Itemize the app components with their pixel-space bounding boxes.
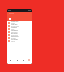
staticText: Amelia Chen	[11, 21, 19, 23]
button[interactable]: Tab 3	[20, 57, 26, 63]
staticText: Sounds good	[11, 35, 18, 36]
staticText: Liam Walker	[11, 30, 19, 32]
button[interactable]: Mia Tanaka	[7, 33, 32, 36]
button[interactable]: Amelia Chen	[7, 21, 32, 24]
button[interactable]: Tab 1	[7, 57, 14, 63]
staticText: Ava Moreau	[11, 39, 18, 41]
staticText: Ethan Brooks	[11, 36, 19, 38]
staticText: Reschedule?	[11, 32, 18, 33]
button[interactable]: Add	[26, 57, 32, 63]
button[interactable]: Sofia Rossi	[7, 27, 32, 30]
staticText: Sofia Rossi	[11, 27, 18, 29]
staticText: Sent files	[11, 38, 16, 39]
button[interactable]: Liam Walker	[7, 30, 32, 33]
button[interactable]: Ethan Brooks	[7, 36, 32, 39]
button[interactable]: Ava Moreau	[7, 39, 32, 42]
staticText: Noah Patel	[11, 24, 18, 26]
button[interactable]: Tab 2	[14, 57, 20, 63]
staticText: Photo	[11, 29, 15, 30]
staticText: Call me	[11, 41, 15, 42]
button[interactable]: Noah Patel	[7, 24, 32, 27]
staticText: See you at nine	[11, 26, 19, 27]
staticText: Mia Tanaka	[11, 33, 18, 35]
